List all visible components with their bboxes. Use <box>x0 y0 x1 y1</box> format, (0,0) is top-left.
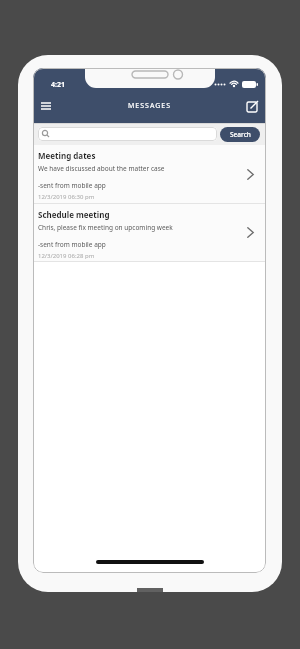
staticText: Meeting dates <box>38 150 96 161</box>
staticText: We have discussed about the matter case <box>38 164 165 173</box>
button[interactable] <box>38 127 217 141</box>
button[interactable] <box>245 98 261 114</box>
staticText: Search <box>230 130 251 139</box>
button[interactable] <box>37 97 55 115</box>
button[interactable]: Schedule meeting <box>33 204 266 261</box>
staticText: 12/3/2019 06:30 pm <box>38 193 95 201</box>
button[interactable]: Meeting dates <box>33 145 266 203</box>
staticText: -sent from mobile app <box>38 240 106 249</box>
staticText: 12/3/2019 06:28 pm <box>38 252 95 260</box>
staticText: MESSAGES <box>128 101 172 111</box>
button[interactable]: Search <box>220 127 260 142</box>
staticText: -sent from mobile app <box>38 181 106 190</box>
staticText: Schedule meeting <box>38 209 110 220</box>
staticText: 4:21 <box>51 80 65 90</box>
staticText: Chris, please fix meeting on upcoming we… <box>38 223 173 232</box>
